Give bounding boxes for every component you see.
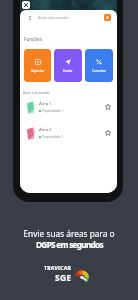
staticText: Propriedade 1 [42,135,64,139]
button[interactable]: Adicionar área [104,14,111,21]
staticText: Área 2 [39,127,52,133]
staticText: DGPS em segundos [36,239,103,250]
button[interactable]: Conectar [85,49,113,82]
button[interactable]: Favoritar [103,128,113,138]
staticText: Área 1 [39,101,52,107]
button[interactable]: Exportar [24,49,51,82]
staticText: Áreas selecionadas [38,15,69,20]
staticText: SGE [55,272,72,284]
staticText: Enviar [63,68,73,72]
staticText: Propriedade 1 [42,109,64,113]
button[interactable]: Enviar [54,49,82,82]
staticText: Exportar [31,68,45,72]
staticText: Envie suas áreas para o [23,228,115,239]
staticText: TRAVICAR [44,264,72,271]
button[interactable]: Área 1 [26,94,113,120]
button[interactable]: Área 2 [26,120,113,146]
staticText: Áreas selecionadas [23,91,50,95]
button[interactable]: Fechar [22,1,30,9]
button[interactable]: Favoritar [103,102,113,112]
staticText: Funções [24,36,42,42]
staticText: Conectar [92,68,106,72]
